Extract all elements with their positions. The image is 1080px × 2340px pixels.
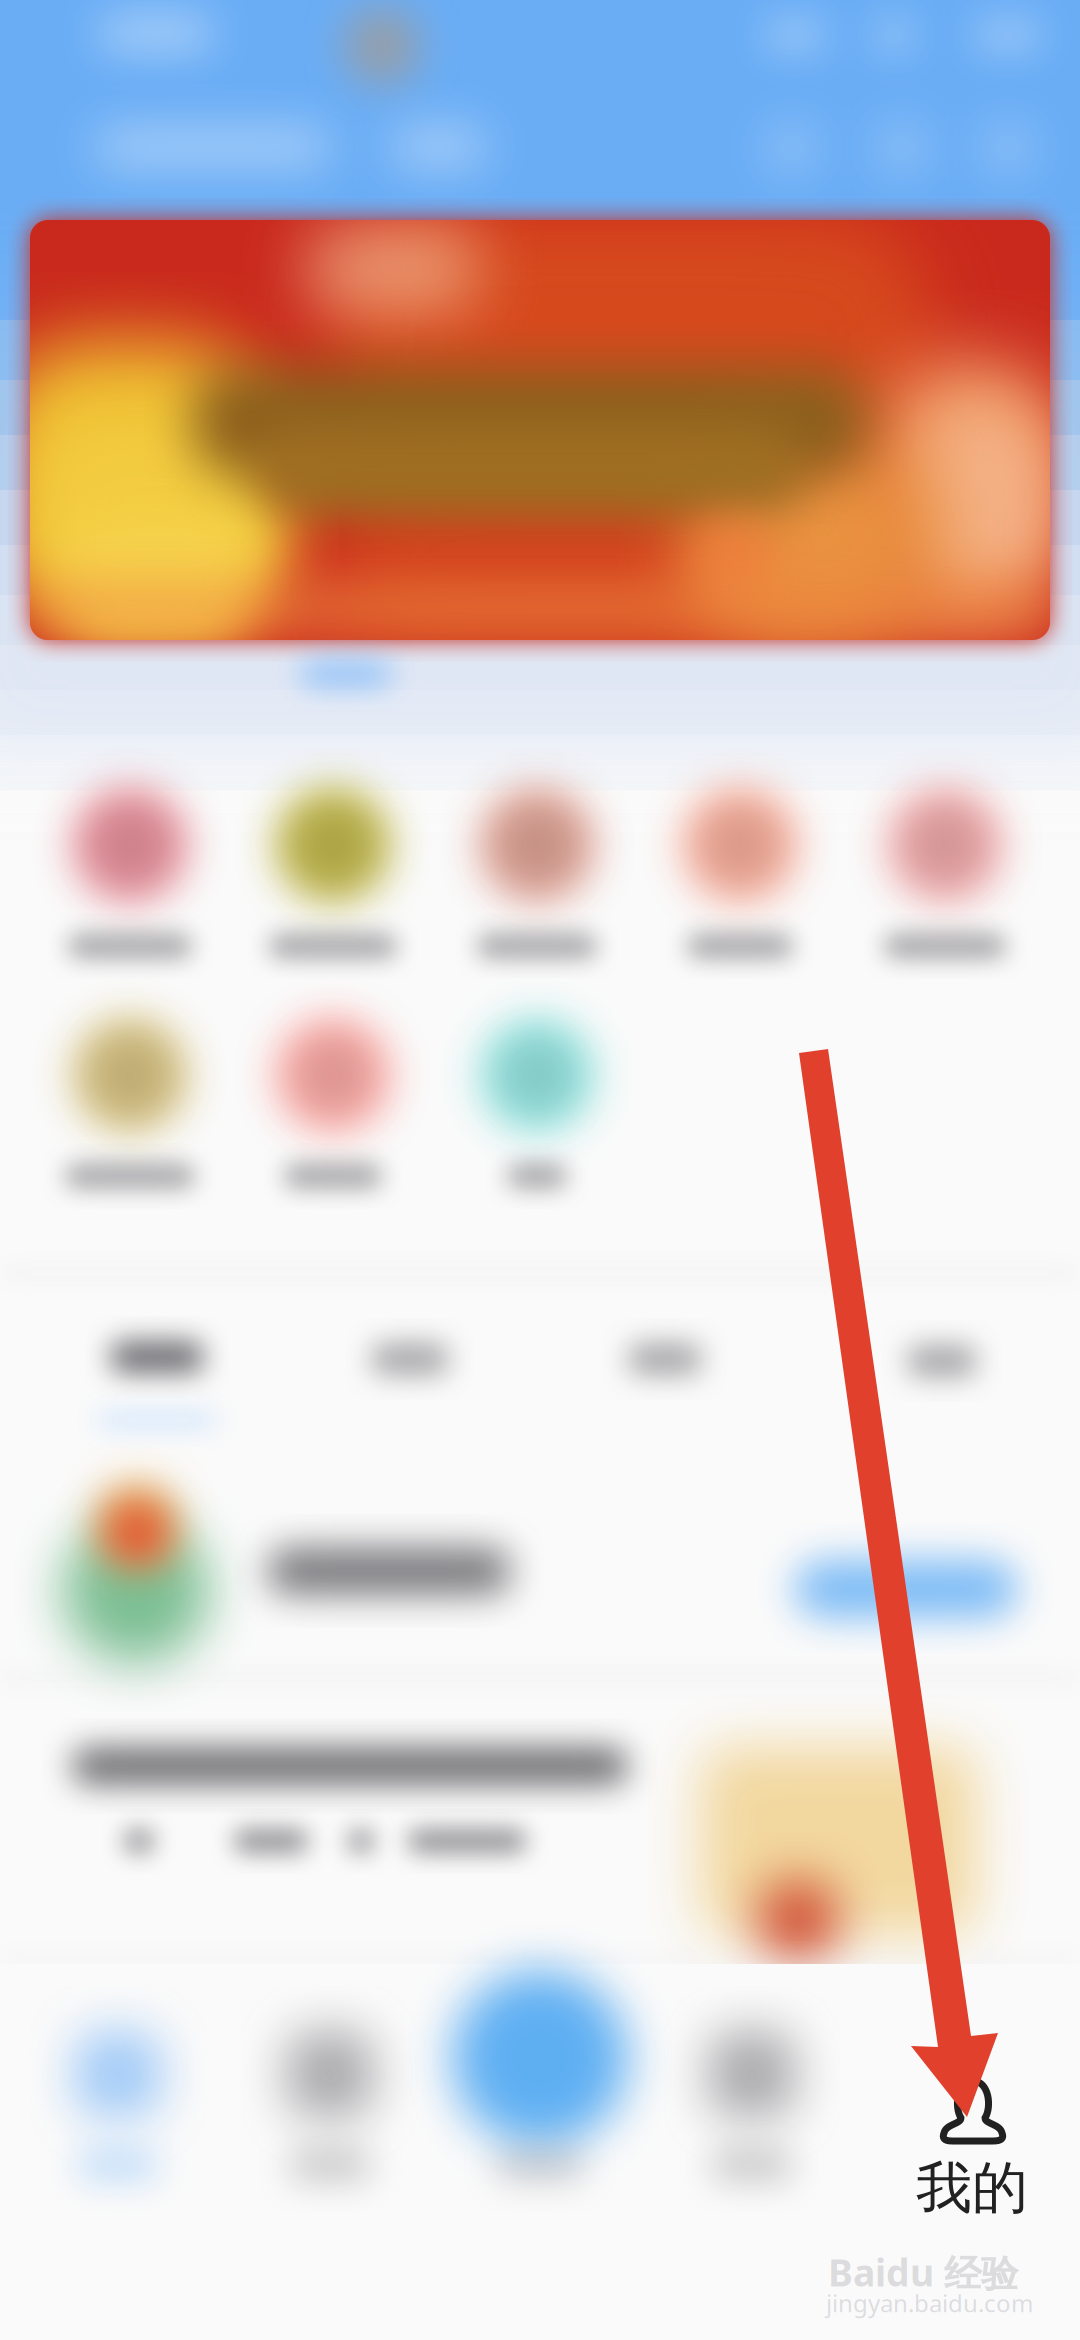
- button[interactable]: 排行: [0, 0, 1080, 2340]
- button[interactable]: 应用入口: [0, 0, 1080, 2340]
- button[interactable]: 推荐内容: [0, 0, 1080, 2340]
- button[interactable]: 应用入口: [0, 0, 1080, 2340]
- staticText: jingyan.baidu.com: [826, 2287, 1033, 2319]
- button[interactable]: 首页: [0, 0, 1080, 2340]
- button[interactable]: 应用入口: [0, 0, 1080, 2340]
- button[interactable]: 应用入口: [0, 0, 1080, 2340]
- button[interactable]: 理财: [0, 0, 1080, 2340]
- staticText: 我的: [916, 2154, 1028, 2222]
- button[interactable]: 活动横幅: [0, 0, 1080, 2340]
- button[interactable]: 应用入口: [0, 0, 1080, 2340]
- button[interactable]: 我的: [0, 0, 1080, 2340]
- button[interactable]: 专区: [0, 0, 1080, 2340]
- button[interactable]: 更多: [0, 0, 1080, 2340]
- staticText: Baidu 经验: [828, 2247, 1018, 2297]
- button[interactable]: 应用入口: [0, 0, 1080, 2340]
- button[interactable]: 推荐: [0, 0, 1080, 2340]
- button[interactable]: 应用入口: [0, 0, 1080, 2340]
- button[interactable]: 付钱／收钱: [0, 0, 1080, 2340]
- button[interactable]: 领取优惠: [0, 0, 1080, 2340]
- button[interactable]: 朋友: [0, 0, 1080, 2340]
- button[interactable]: 应用入口: [0, 0, 1080, 2340]
